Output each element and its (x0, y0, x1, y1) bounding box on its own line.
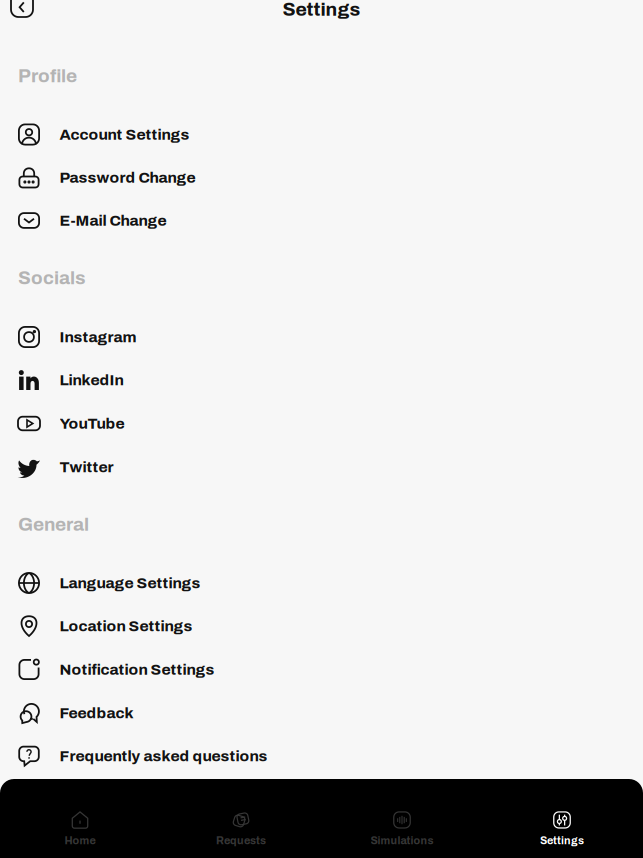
staticText: Settings (282, 0, 360, 20)
staticText: General (18, 514, 89, 535)
button[interactable]: LinkedIn (0, 358, 643, 401)
staticText: Simulations (370, 835, 433, 846)
staticText: Location Settings (59, 618, 192, 634)
button[interactable]: Home (5, 797, 155, 858)
button[interactable]: Instagram (0, 315, 643, 358)
staticText: Account Settings (59, 126, 189, 143)
staticText: Notification Settings (59, 661, 214, 678)
staticText: YouTube (59, 415, 124, 432)
staticText: Profile (18, 66, 77, 86)
staticText: LinkedIn (59, 372, 123, 388)
button[interactable]: Language Settings (0, 561, 643, 604)
staticText: Instagram (59, 329, 136, 345)
button[interactable]: Account Settings (0, 113, 643, 156)
button[interactable]: Password Change (0, 156, 643, 199)
staticText: Password Change (59, 169, 195, 186)
staticText: Settings (540, 835, 584, 846)
staticText: Socials (18, 268, 86, 288)
button[interactable]: YouTube (0, 402, 643, 445)
button[interactable]: Feedback (0, 691, 643, 734)
button[interactable]: Settings (487, 797, 637, 858)
button[interactable]: E-Mail Change (0, 199, 643, 242)
staticText: Home (64, 835, 95, 846)
button[interactable]: Simulations (327, 797, 477, 858)
button[interactable]: Requests (166, 797, 316, 858)
staticText: E-Mail Change (59, 212, 166, 229)
button[interactable]: Frequently asked questions (0, 734, 643, 777)
staticText: Twitter (59, 459, 113, 475)
staticText: Frequently asked questions (59, 748, 267, 764)
staticText: Requests (216, 835, 266, 846)
button[interactable]: Twitter (0, 445, 643, 488)
staticText: Feedback (59, 705, 133, 721)
button[interactable]: Back (4, 0, 40, 31)
staticText: Language Settings (59, 575, 200, 591)
button[interactable]: Location Settings (0, 604, 643, 647)
button[interactable]: Notification Settings (0, 648, 643, 691)
